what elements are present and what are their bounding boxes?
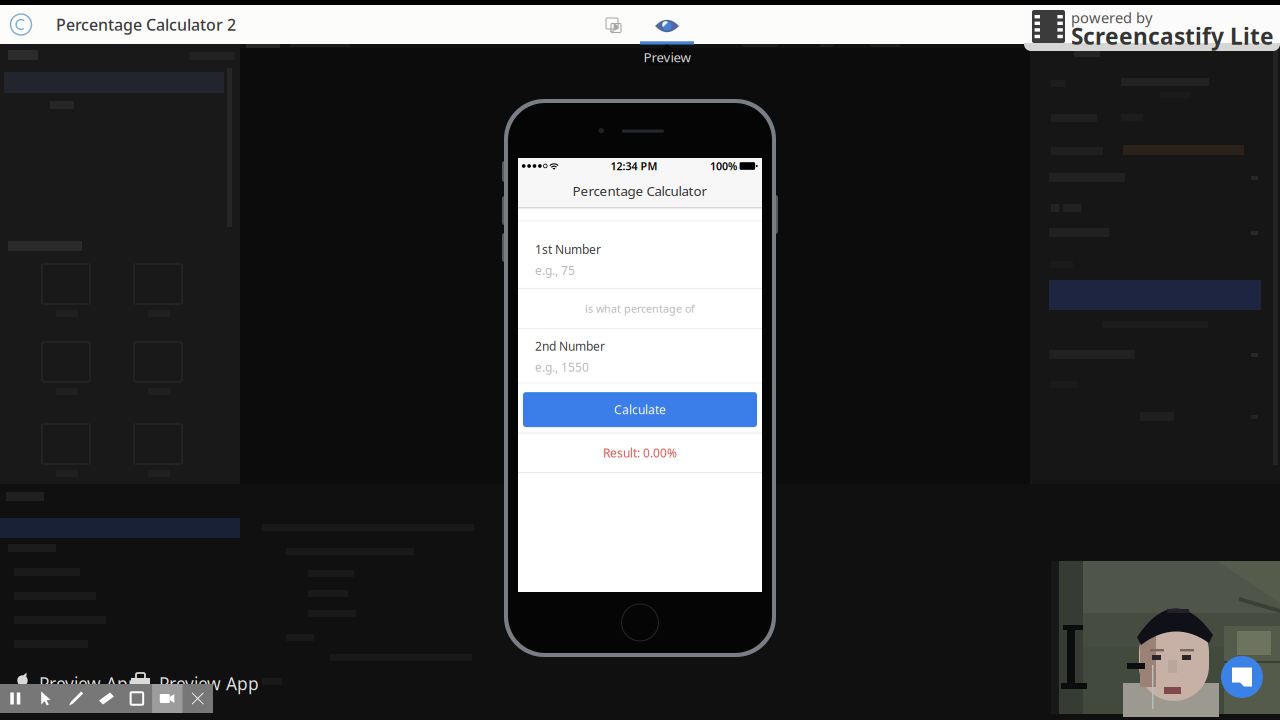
staticText: Preview bbox=[643, 48, 690, 66]
staticText: Screencastify Lite bbox=[1071, 21, 1274, 51]
staticText: is what percentage of bbox=[585, 301, 695, 316]
staticText: 12:34 PM bbox=[610, 159, 657, 173]
button[interactable]: Toggle webcam bbox=[152, 684, 182, 713]
button[interactable]: Percentage Calculator 2 bbox=[0, 5, 260, 44]
staticText: Calculate bbox=[614, 402, 666, 417]
button[interactable]: Stop recording bbox=[182, 684, 213, 713]
button[interactable]: Eraser tool bbox=[91, 684, 122, 713]
staticText: e.g., 75 bbox=[535, 262, 575, 278]
button[interactable]: Pointer tool bbox=[30, 684, 61, 713]
button[interactable]: Calculate bbox=[518, 384, 762, 433]
staticText: Preview App bbox=[39, 672, 139, 695]
button[interactable]: Pause recording bbox=[0, 684, 30, 713]
staticText: Percentage Calculator bbox=[572, 182, 707, 200]
staticText: 100% bbox=[710, 159, 737, 173]
staticText: 2nd Number bbox=[535, 338, 605, 354]
button[interactable]: Pen tool bbox=[61, 684, 91, 713]
button[interactable]: Open preview in a new window bbox=[585, 4, 639, 43]
button[interactable]: Preview bbox=[640, 6, 694, 45]
staticText: e.g., 1550 bbox=[535, 359, 589, 375]
staticText: powered by bbox=[1071, 8, 1152, 27]
staticText: Percentage Calculator 2 bbox=[56, 14, 236, 35]
staticText: Preview App bbox=[159, 672, 259, 695]
staticText: Result: 0.00% bbox=[603, 445, 677, 461]
staticText: 1st Number bbox=[535, 241, 601, 257]
button[interactable]: Rectangle tool bbox=[122, 684, 152, 713]
